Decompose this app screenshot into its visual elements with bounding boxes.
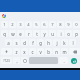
staticText: w [11, 31, 15, 37]
button[interactable]: b [44, 47, 52, 56]
button[interactable]: u [48, 29, 56, 38]
staticText: y [43, 31, 46, 37]
staticText: o [67, 31, 70, 37]
staticText: j [56, 40, 58, 46]
staticText: p [75, 31, 78, 37]
staticText: c [31, 49, 34, 55]
button[interactable]: Backspace [68, 47, 80, 56]
button[interactable]: Google Search [0, 12, 8, 20]
button[interactable]: o [64, 29, 72, 38]
staticText: r [28, 31, 30, 37]
button[interactable]: . [58, 56, 68, 65]
button[interactable]: 0 [72, 20, 80, 29]
button[interactable]: s [12, 38, 20, 47]
staticText: . [63, 58, 65, 64]
button[interactable]: l [68, 38, 76, 47]
button[interactable]: Enter [68, 56, 80, 65]
button[interactable]: 9 [64, 20, 72, 29]
staticText: d [23, 40, 26, 46]
staticText: h [47, 40, 50, 46]
button[interactable]: g [36, 38, 44, 47]
staticText: s [15, 40, 18, 46]
button[interactable]: r [24, 29, 32, 38]
button[interactable]: v [36, 47, 44, 56]
staticText: l [72, 40, 74, 46]
button[interactable]: c [28, 47, 36, 56]
staticText: v [39, 49, 42, 55]
staticText: i [60, 31, 62, 37]
staticText: 7 [51, 22, 54, 28]
staticText: 2 [11, 22, 14, 28]
button[interactable]: p [72, 29, 80, 38]
button[interactable]: , [12, 56, 20, 65]
staticText: x [23, 49, 26, 55]
staticText: ?123 [3, 59, 10, 63]
button[interactable]: Shift [0, 47, 12, 56]
button[interactable]: 5 [32, 20, 40, 29]
staticText: 1 [3, 22, 6, 28]
button[interactable]: 3 [16, 20, 24, 29]
button[interactable]: ?123 [0, 56, 12, 65]
staticText: e [19, 31, 22, 37]
button[interactable]: f [28, 38, 36, 47]
staticText: t [36, 31, 38, 37]
button[interactable]: z [12, 47, 20, 56]
button[interactable]: a [4, 38, 12, 47]
staticText: , [16, 58, 18, 64]
button[interactable]: w [8, 29, 16, 38]
staticText: 8 [59, 22, 62, 28]
staticText: k [63, 40, 66, 46]
staticText: q [3, 31, 6, 37]
button[interactable]: 4 [24, 20, 32, 29]
button[interactable]: q [0, 29, 8, 38]
staticText: z [15, 49, 18, 55]
staticText: n [55, 49, 58, 55]
button[interactable]: i [56, 29, 64, 38]
button[interactable]: 2 [8, 20, 16, 29]
staticText: 6 [43, 22, 46, 28]
staticText: 5 [35, 22, 38, 28]
button[interactable]: n [52, 47, 60, 56]
button[interactable]: 8 [56, 20, 64, 29]
button[interactable]: k [60, 38, 68, 47]
button[interactable]: t [32, 29, 40, 38]
button[interactable]: j [52, 38, 60, 47]
button[interactable]: e [16, 29, 24, 38]
button[interactable]: 6 [40, 20, 48, 29]
staticText: 9 [67, 22, 70, 28]
staticText: a [7, 40, 10, 46]
button[interactable]: y [40, 29, 48, 38]
button[interactable]: 7 [48, 20, 56, 29]
staticText: f [32, 40, 34, 46]
button[interactable]: h [44, 38, 52, 47]
button[interactable]: m [60, 47, 68, 56]
staticText: 4 [27, 22, 30, 28]
staticText: 0 [75, 22, 78, 28]
staticText: u [51, 31, 54, 37]
button[interactable]: x [20, 47, 28, 56]
staticText: g [39, 40, 42, 46]
button[interactable]: d [20, 38, 28, 47]
button[interactable]: Emoji [20, 56, 28, 65]
button[interactable]: 1 [0, 20, 8, 29]
staticText: b [47, 49, 50, 55]
staticText: m [62, 49, 67, 55]
staticText: 3 [19, 22, 22, 28]
